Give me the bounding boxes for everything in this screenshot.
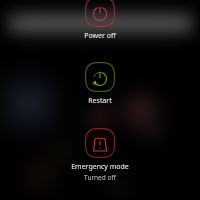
staticText: Power off (84, 31, 116, 41)
staticText: Emergency mode (71, 162, 129, 172)
staticText: Restart (88, 96, 112, 106)
button[interactable]: Power off (0, 0, 200, 41)
button[interactable]: Emergency mode (0, 128, 200, 182)
button[interactable]: Restart (0, 62, 200, 106)
staticText: Turned off (84, 173, 116, 182)
